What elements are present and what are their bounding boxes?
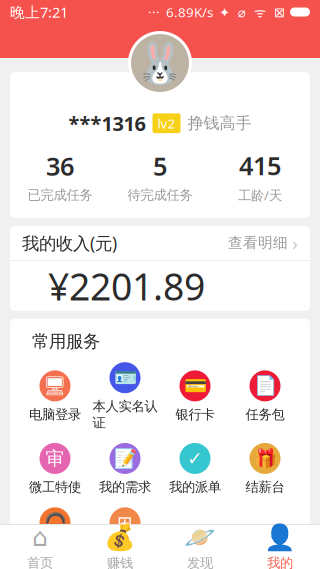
staticText: 💳: [183, 375, 206, 396]
button[interactable]: ✓: [160, 443, 230, 495]
staticText: ⌂: [32, 523, 48, 552]
staticText: ⊞: [117, 512, 133, 533]
button[interactable]: 👤: [240, 525, 320, 569]
staticText: ***1316: [68, 110, 145, 137]
button[interactable]: 📄: [230, 370, 300, 423]
staticText: 🪪: [113, 367, 136, 388]
button[interactable]: ⌂: [0, 525, 80, 569]
staticText: 发现: [187, 555, 213, 569]
staticText: 赚钱: [107, 555, 133, 569]
staticText: 电脑登录: [29, 406, 81, 423]
staticText: 我的派单: [169, 479, 221, 495]
button[interactable]: 🪪: [90, 362, 160, 431]
staticText: 我的需求: [99, 479, 151, 495]
staticText: 💰: [104, 523, 136, 552]
staticText: 我的: [267, 555, 293, 569]
staticText: 🪐: [184, 523, 216, 552]
staticText: 任务包: [245, 406, 284, 423]
button[interactable]: 审: [20, 443, 90, 495]
staticText: 5: [153, 149, 167, 183]
staticText: 🎁: [253, 448, 276, 469]
button[interactable]: 💳: [160, 370, 230, 423]
staticText: 👤: [264, 523, 296, 552]
staticText: ¥2201.89: [48, 261, 205, 311]
staticText: 在线客服: [29, 543, 81, 560]
staticText: 待完成任务: [127, 187, 192, 203]
staticText: 本人实名认证: [92, 398, 157, 431]
staticText: ✓: [187, 448, 203, 469]
button[interactable]: 🖥: [20, 370, 90, 423]
button[interactable]: 🎁: [230, 443, 300, 495]
button[interactable]: 📝: [90, 443, 160, 495]
staticText: 36: [46, 149, 74, 183]
staticText: ›: [292, 230, 298, 255]
staticText: ··· 6.89K/s ✦ ⌀ ᯤ ⊠: [148, 3, 285, 21]
staticText: 415: [239, 149, 281, 182]
button[interactable]: 💰: [80, 525, 160, 569]
staticText: 结薪台: [245, 479, 284, 495]
staticText: 微工特使: [29, 479, 81, 495]
button[interactable]: 🪐: [160, 525, 240, 569]
staticText: 🎧: [43, 512, 66, 533]
staticText: 首页: [27, 555, 53, 569]
staticText: 🐰: [135, 40, 185, 86]
button[interactable]: ⊞: [90, 507, 160, 560]
staticText: 晚上7:21: [10, 2, 68, 22]
staticText: 审: [45, 447, 64, 470]
staticText: 查看明细: [228, 234, 288, 252]
staticText: 银行卡: [175, 406, 214, 423]
staticText: 已完成任务: [27, 187, 92, 203]
staticText: 🖥: [43, 375, 67, 396]
button[interactable]: 我的收入(元): [10, 226, 310, 260]
staticText: 关于微工: [99, 543, 151, 560]
button[interactable]: 🎧: [20, 507, 90, 560]
staticText: 📝: [113, 448, 136, 469]
staticText: 📄: [253, 375, 276, 396]
staticText: 挣钱高手: [187, 113, 251, 133]
staticText: 我的收入(元): [22, 231, 117, 254]
staticText: lv2: [157, 114, 175, 132]
staticText: 常用服务: [32, 331, 100, 352]
staticText: 工龄/天: [238, 186, 282, 204]
